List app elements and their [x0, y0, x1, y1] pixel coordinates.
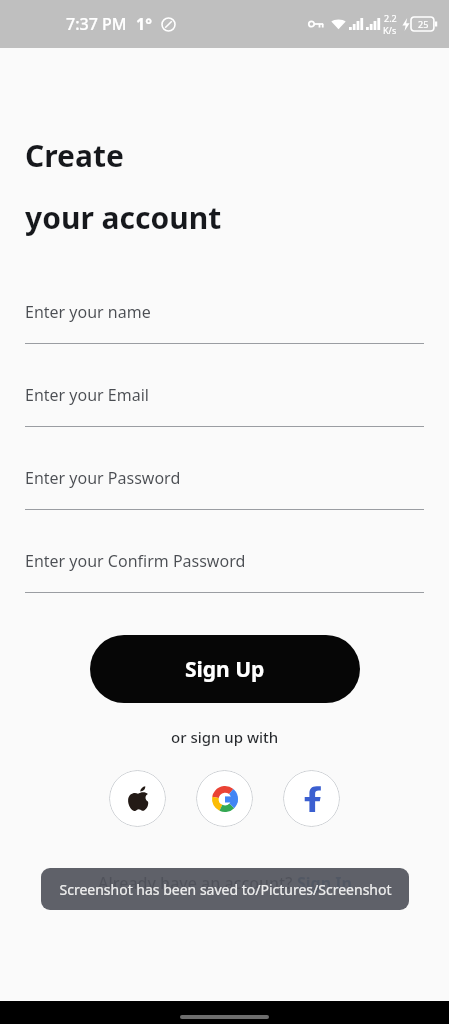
- button[interactable]: Sign Up: [90, 635, 360, 703]
- button[interactable]: Sign up with Facebook: [283, 770, 340, 827]
- staticText: 25: [418, 18, 429, 30]
- staticText: Enter your Password: [25, 467, 181, 489]
- staticText: Enter your name: [25, 301, 151, 323]
- staticText: 1°: [136, 13, 152, 35]
- staticText: Create: [25, 135, 124, 176]
- staticText: Sign Up: [185, 655, 265, 684]
- staticText: Already have an account?: [98, 872, 297, 894]
- staticText: 7:37 PM: [66, 13, 127, 35]
- staticText: Enter your Email: [25, 384, 149, 406]
- button[interactable]: Sign In: [297, 872, 352, 894]
- staticText: K/s: [383, 24, 397, 36]
- button[interactable]: Sign up with Google: [196, 770, 253, 827]
- staticText: your account: [25, 197, 222, 238]
- staticText: Enter your Confirm Password: [25, 550, 246, 572]
- staticText: or sign up with: [171, 727, 279, 747]
- staticText: Sign In: [297, 872, 352, 894]
- button[interactable]: Sign up with Apple: [109, 770, 166, 827]
- staticText: 2.2: [384, 12, 397, 24]
- staticText: Screenshot has been saved to/Pictures/Sc…: [59, 880, 392, 899]
